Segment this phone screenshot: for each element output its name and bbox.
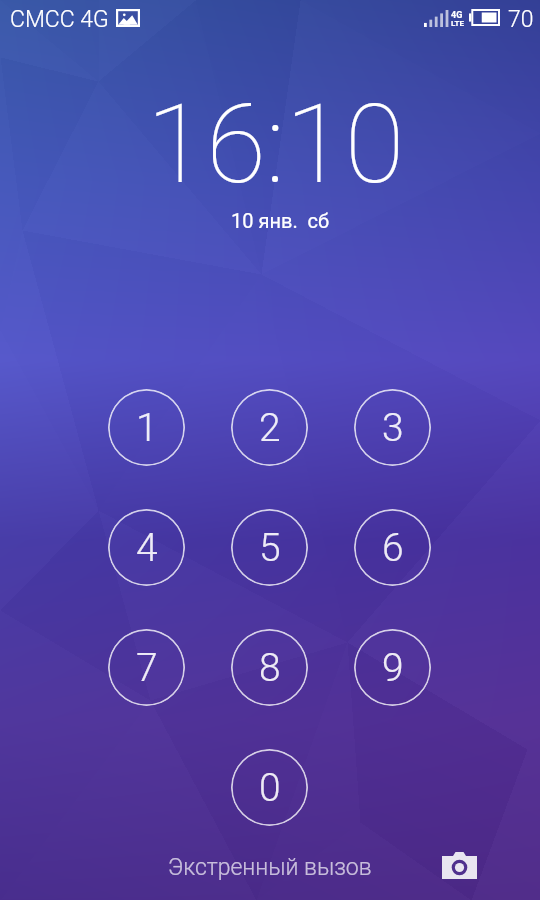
button[interactable]: Camera — [436, 846, 482, 886]
staticText: 8 — [259, 645, 281, 691]
button[interactable]: 3 — [354, 389, 431, 466]
staticText: 2 — [259, 405, 281, 451]
staticText: 5 — [259, 525, 281, 571]
staticText: 4G — [451, 10, 463, 21]
button[interactable]: 0 — [231, 749, 308, 826]
button[interactable]: 6 — [354, 509, 431, 586]
staticText: 4 — [136, 525, 158, 571]
button[interactable]: 9 — [354, 629, 431, 706]
staticText: 7 — [136, 645, 158, 691]
staticText: 9 — [382, 645, 404, 691]
button[interactable]: 5 — [231, 509, 308, 586]
staticText: 1 — [136, 405, 158, 451]
staticText: 10 янв. сб — [231, 209, 330, 232]
staticText: 16:10 — [146, 81, 405, 209]
staticText: 0 — [259, 765, 281, 811]
staticText: 6 — [382, 525, 404, 571]
button[interactable]: 2 — [231, 389, 308, 466]
staticText: LTE — [451, 19, 464, 28]
button[interactable]: 8 — [231, 629, 308, 706]
button[interactable]: 7 — [108, 629, 185, 706]
staticText: 3 — [382, 405, 404, 451]
staticText: 70 — [508, 6, 534, 33]
button[interactable]: Экстренный вызов — [168, 854, 372, 881]
button[interactable]: 1 — [108, 389, 185, 466]
staticText: CMCC 4G — [10, 6, 109, 33]
button[interactable]: 4 — [108, 509, 185, 586]
